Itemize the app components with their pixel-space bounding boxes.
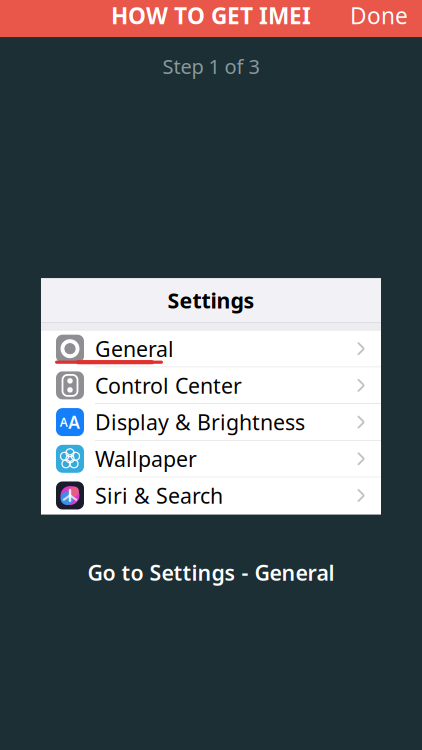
button[interactable]: Done: [336, 0, 422, 39]
staticText: Wallpaper: [95, 445, 197, 473]
button[interactable]: General: [41, 331, 381, 367]
staticText: A: [68, 411, 80, 434]
staticText: Step 1 of 3: [162, 53, 259, 80]
staticText: Go to Settings - General: [87, 558, 334, 586]
staticText: HOW TO GET IMEI: [111, 0, 311, 31]
button[interactable]: Siri & Search: [41, 477, 381, 514]
staticText: Display & Brightness: [95, 408, 305, 436]
staticText: Control Center: [95, 371, 242, 399]
staticText: General: [95, 334, 174, 363]
staticText: Siri & Search: [95, 481, 223, 510]
button[interactable]: Control Center: [41, 367, 381, 404]
button[interactable]: Wallpaper: [41, 441, 381, 477]
button[interactable]: A: [41, 404, 381, 441]
staticText: Done: [350, 0, 408, 31]
staticText: Settings: [167, 286, 254, 314]
staticText: A: [60, 414, 68, 430]
